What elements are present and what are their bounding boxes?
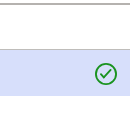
button[interactable]: Completed [84, 50, 130, 96]
button[interactable]: Completed [0, 50, 130, 96]
